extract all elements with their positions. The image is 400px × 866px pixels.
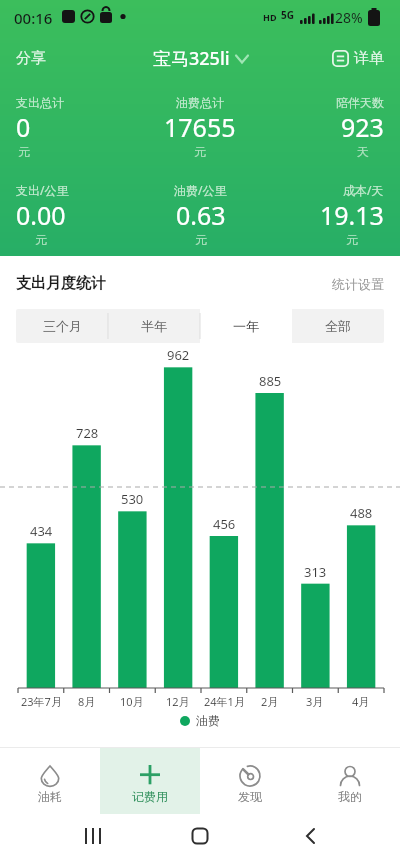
staticText: 元: [195, 232, 207, 247]
staticText: 2月: [261, 694, 279, 709]
button[interactable]: 半年: [108, 309, 200, 343]
staticText: 885: [259, 372, 282, 390]
staticText: 530: [121, 490, 144, 508]
staticText: 油耗: [38, 789, 62, 804]
staticText: 全部: [325, 318, 351, 334]
staticText: 0.63: [176, 198, 226, 232]
staticText: 支出/公里: [16, 182, 69, 198]
staticText: 488: [350, 504, 373, 522]
staticText: 陪伴天数: [336, 95, 384, 110]
staticText: 456: [213, 515, 236, 533]
button[interactable]: 三个月: [16, 309, 108, 343]
staticText: 油费总计: [176, 95, 224, 110]
staticText: 宝马325li: [153, 46, 230, 71]
staticText: 19.13: [320, 198, 384, 232]
button[interactable]: 记费用: [100, 748, 200, 814]
staticText: 统计设置: [332, 276, 384, 292]
button[interactable]: 详单: [332, 49, 384, 68]
staticText: 17655: [164, 110, 236, 144]
staticText: 半年: [141, 318, 167, 334]
staticText: 23年7月: [21, 694, 62, 709]
staticText: 支出月度统计: [16, 274, 106, 293]
staticText: 12月: [166, 694, 190, 709]
staticText: 详单: [354, 49, 384, 68]
staticText: 发现: [238, 789, 262, 804]
staticText: 我的: [338, 789, 362, 804]
staticText: 油费: [196, 713, 220, 728]
button[interactable]: 宝马325li: [153, 46, 248, 71]
staticText: 记费用: [132, 789, 168, 804]
button[interactable]: 分享: [16, 49, 46, 68]
staticText: 三个月: [43, 318, 82, 334]
button[interactable]: 我的: [300, 748, 400, 814]
staticText: 923: [341, 110, 384, 144]
staticText: 962: [167, 346, 190, 364]
button[interactable]: 油耗: [0, 748, 100, 814]
staticText: 313: [304, 563, 327, 581]
staticText: 支出总计: [16, 95, 64, 110]
staticText: HD: [263, 11, 277, 23]
staticText: 8月: [78, 694, 96, 709]
staticText: 3月: [306, 694, 324, 709]
button[interactable]: 发现: [200, 748, 300, 814]
staticText: 728: [76, 424, 99, 442]
staticText: 00:16: [14, 8, 53, 28]
staticText: 天: [357, 144, 369, 159]
staticText: 0.00: [16, 198, 66, 232]
staticText: 4月: [352, 694, 370, 709]
staticText: 元: [18, 144, 30, 159]
staticText: 油费/公里: [174, 182, 227, 198]
button[interactable]: 统计设置: [332, 276, 384, 292]
staticText: 0: [16, 110, 31, 144]
staticText: 10月: [120, 694, 144, 709]
staticText: 24年1月: [204, 694, 245, 709]
staticText: 434: [30, 522, 53, 540]
button[interactable]: 一年: [200, 309, 292, 343]
staticText: 28%: [335, 8, 363, 27]
staticText: 元: [35, 232, 47, 247]
staticText: 分享: [16, 49, 46, 68]
staticText: 元: [194, 144, 206, 159]
staticText: 元: [346, 232, 358, 247]
staticText: 5G: [281, 8, 294, 22]
button[interactable]: 全部: [292, 309, 384, 343]
staticText: 成本/天: [343, 182, 384, 198]
staticText: 一年: [233, 318, 259, 334]
